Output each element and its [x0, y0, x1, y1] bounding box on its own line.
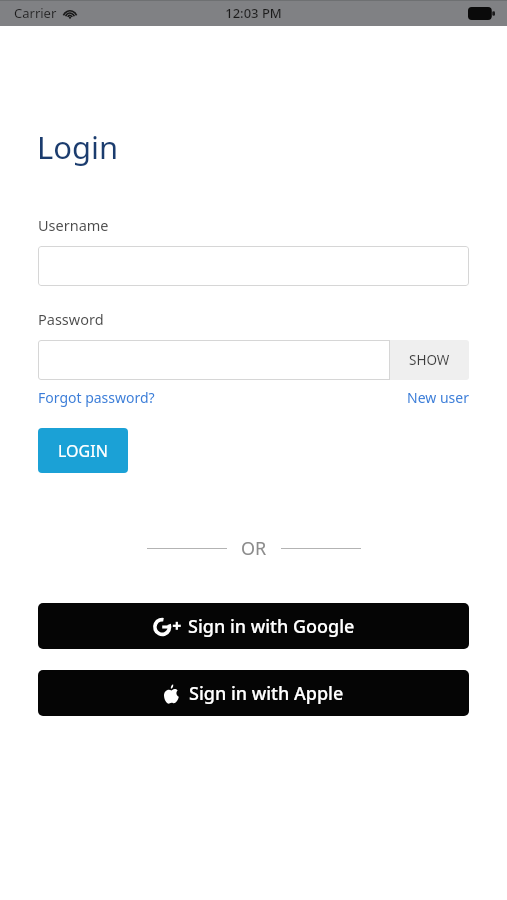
staticText: SHOW: [409, 351, 450, 369]
staticText: 12:03 PM: [225, 4, 282, 22]
button[interactable]: Password input: [38, 340, 390, 380]
staticText: LOGIN: [58, 440, 108, 462]
button[interactable]: LOGIN: [38, 428, 128, 473]
button[interactable]: Forgot password?: [38, 388, 155, 407]
staticText: Sign in with Google: [188, 614, 355, 639]
staticText: New user: [407, 388, 469, 407]
staticText: Login: [37, 126, 119, 168]
button[interactable]: New user: [407, 388, 469, 407]
staticText: Sign in with Apple: [189, 681, 344, 706]
staticText: OR: [241, 536, 267, 561]
staticText: Carrier: [14, 4, 57, 22]
staticText: Password: [38, 309, 104, 329]
staticText: Username: [38, 215, 109, 235]
button[interactable]: Sign in with Google: [38, 603, 469, 649]
staticText: Forgot password?: [38, 388, 155, 407]
button[interactable]: SHOW: [390, 340, 469, 380]
button[interactable]: Sign in with Apple: [38, 670, 469, 716]
button[interactable]: Username input: [38, 246, 469, 286]
